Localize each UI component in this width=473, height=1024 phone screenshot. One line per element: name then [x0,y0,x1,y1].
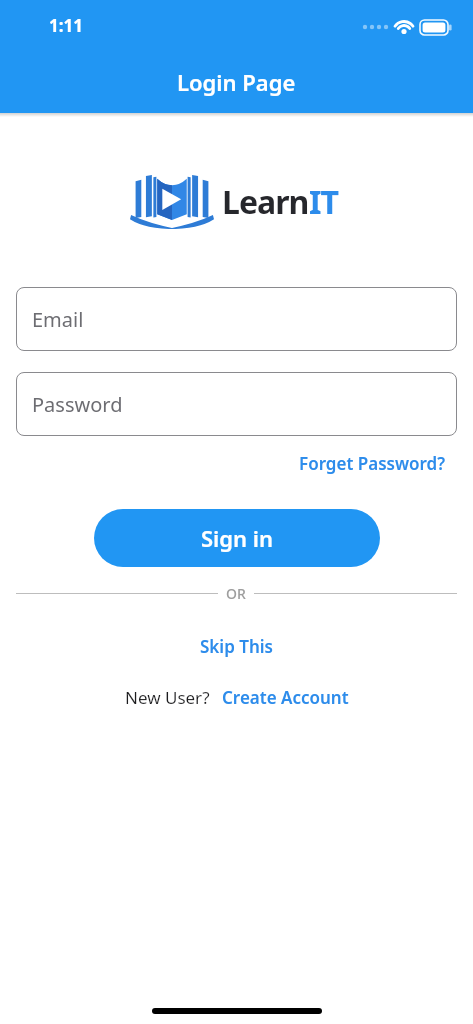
button[interactable]: Forget Password? [299,452,446,475]
staticText: Login Page [177,67,296,97]
button[interactable]: Password [16,372,457,436]
staticText: OR [226,584,246,602]
staticText: Email [32,306,84,333]
button[interactable]: Email [16,287,457,351]
button[interactable]: Sign in [94,509,380,567]
button[interactable]: Skip This [200,635,273,658]
staticText: 1:11 [49,14,83,37]
staticText: New User? [125,686,210,709]
button[interactable]: Create Account [222,686,349,709]
staticText: Sign in [201,523,274,553]
staticText: IT [309,180,338,224]
staticText: Password [32,391,123,418]
staticText: Learn [222,180,309,224]
